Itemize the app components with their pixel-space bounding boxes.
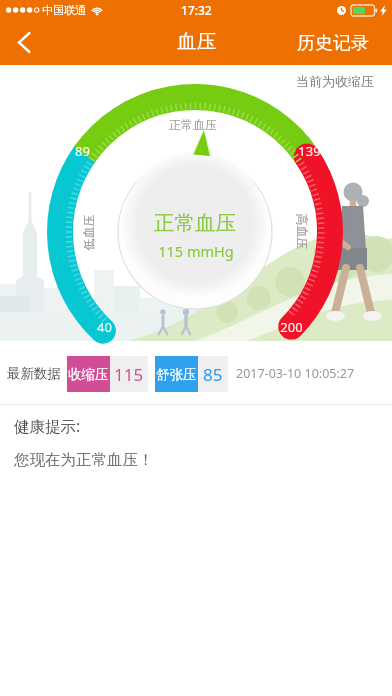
- staticText: 85: [203, 363, 223, 386]
- button[interactable]: 舒张压: [155, 356, 228, 392]
- button[interactable]: 历史记录: [283, 20, 392, 65]
- staticText: 正常血压: [154, 210, 236, 236]
- staticText: 115 mmHg: [158, 241, 234, 261]
- staticText: 17:32: [181, 2, 212, 18]
- staticText: 2017-03-10 10:05:27: [236, 365, 355, 382]
- staticText: 高血压: [294, 213, 309, 249]
- button[interactable]: Back: [0, 20, 48, 65]
- staticText: 89: [75, 142, 90, 160]
- staticText: 健康提示:: [14, 415, 81, 436]
- staticText: 最新数据: [7, 365, 61, 382]
- staticText: 正常血压: [169, 117, 217, 132]
- staticText: 139: [298, 142, 321, 160]
- staticText: 历史记录: [297, 32, 369, 55]
- staticText: 低血压: [80, 214, 95, 250]
- staticText: 当前为收缩压: [296, 73, 374, 89]
- staticText: 您现在为正常血压！: [14, 450, 154, 470]
- staticText: 中国联通: [42, 3, 86, 17]
- staticText: 血压: [177, 29, 216, 54]
- staticText: 40: [97, 318, 112, 336]
- staticText: 舒张压: [156, 366, 197, 383]
- button[interactable]: 收缩压: [67, 356, 148, 392]
- staticText: 收缩压: [68, 366, 109, 383]
- staticText: 200: [280, 318, 303, 336]
- staticText: 115: [114, 363, 144, 386]
